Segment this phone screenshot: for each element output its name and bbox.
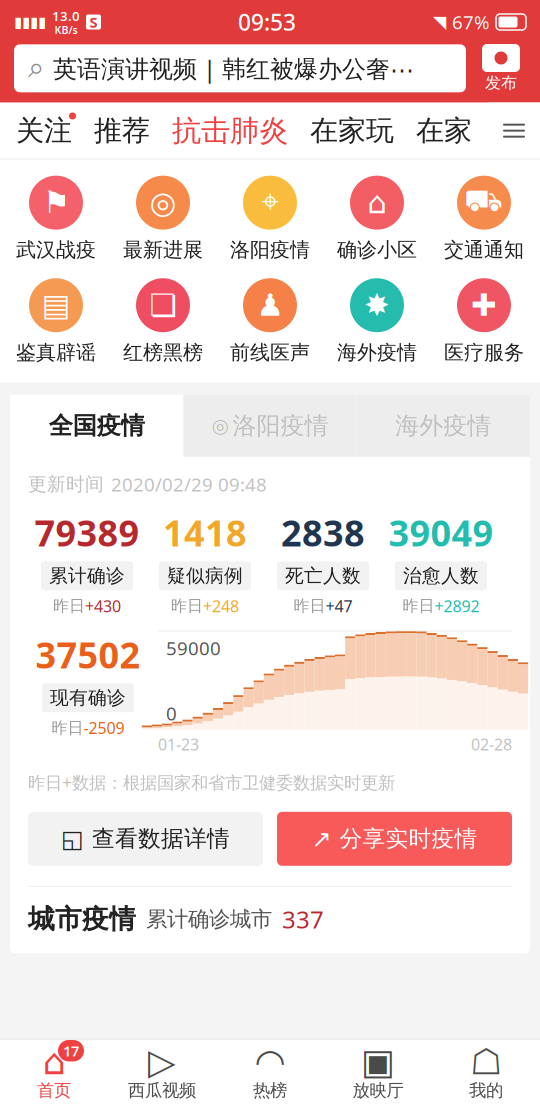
staticText: ↗ [311, 825, 331, 852]
button[interactable]: ⌖ [220, 176, 320, 262]
staticText: 疑似病例 [167, 564, 243, 587]
staticText: 337 [282, 903, 324, 935]
button[interactable]: ◠ [216, 1046, 324, 1101]
button[interactable]: 推荐 [94, 113, 150, 148]
button[interactable]: ⛟ [434, 176, 534, 262]
staticText: 昨日 [402, 596, 434, 616]
button[interactable]: 在家 [416, 113, 472, 148]
staticText: 首页 [37, 1080, 71, 1101]
button[interactable]: ↗ [277, 812, 512, 866]
staticText: 西瓜视频 [128, 1080, 196, 1101]
staticText: 洛阳疫情 [230, 238, 310, 262]
staticText: 79389 [34, 509, 139, 556]
staticText: ⚑ [42, 185, 69, 220]
staticText: ▷ [148, 1041, 176, 1082]
staticText: +47 [325, 595, 352, 616]
staticText: ◱ [61, 825, 84, 852]
button[interactable]: ✸ [327, 278, 427, 365]
staticText: 更新时间 [28, 473, 104, 496]
staticText: 现有确诊 [50, 686, 126, 709]
staticText: 59000 [166, 636, 221, 660]
staticText: ▮▮▮▮ [14, 14, 46, 30]
staticText: 查看数据详情 [92, 825, 230, 853]
button[interactable]: ♟ [220, 278, 320, 365]
staticText: 02-28 [471, 734, 512, 755]
button[interactable]: ⌕ [14, 44, 466, 92]
staticText: 昨日 [171, 596, 203, 616]
staticText: 死亡人数 [285, 564, 361, 587]
staticText: 我的 [469, 1080, 503, 1101]
staticText: ⛟ [464, 188, 503, 218]
staticText: 医疗服务 [444, 340, 524, 365]
button[interactable]: ⌂ [0, 1046, 108, 1101]
staticText: +248 [203, 595, 239, 616]
staticText: ♟ [256, 288, 283, 323]
staticText: 累计确诊城市 [146, 906, 272, 932]
staticText: 推荐 [94, 113, 150, 148]
staticText: 2838 [281, 509, 365, 556]
staticText: 分享实时疫情 [339, 825, 477, 853]
staticText: 交通通知 [444, 238, 524, 262]
button[interactable]: 抗击肺炎 [172, 113, 288, 149]
button[interactable]: ⌂ [327, 176, 427, 262]
staticText: +2892 [434, 595, 479, 616]
staticText: ◠ [254, 1041, 285, 1082]
staticText: ⌖ [261, 188, 278, 218]
staticText: ❏ [149, 288, 176, 323]
button[interactable]: 关注 [16, 113, 72, 148]
staticText: 治愈人数 [403, 564, 479, 587]
staticText: 1418 [163, 509, 247, 556]
staticText: ◎ [211, 414, 228, 437]
staticText: ⌕ [28, 54, 44, 83]
staticText: ◎ [149, 185, 176, 220]
staticText: 城市疫情 [28, 903, 136, 936]
staticText: +430 [85, 595, 121, 616]
staticText: 洛阳疫情 [232, 411, 328, 440]
button[interactable]: ◎ [113, 176, 213, 262]
staticText: 放映厅 [352, 1080, 403, 1101]
button[interactable]: 更多频道 [488, 103, 540, 159]
button[interactable]: ▤ [6, 278, 106, 365]
staticText: 昨日 [51, 718, 83, 738]
button[interactable]: 在家玩 [310, 113, 394, 148]
staticText: 在家 [416, 113, 472, 148]
button[interactable]: ☖ [432, 1046, 540, 1101]
button[interactable]: ❏ [113, 278, 213, 365]
button[interactable]: 海外疫情 [357, 395, 530, 457]
button[interactable]: ▣ [324, 1046, 432, 1101]
staticText: 累计确诊 [49, 564, 125, 587]
staticText: 67% [452, 10, 490, 34]
button[interactable]: ✚ [434, 278, 534, 365]
staticText: ▣ [361, 1041, 395, 1082]
staticText: -2509 [83, 717, 124, 738]
button[interactable]: ⚑ [6, 176, 106, 262]
staticText: 鉴真辟谣 [16, 340, 96, 365]
staticText: ⌂ [367, 185, 386, 220]
staticText: 海外疫情 [395, 411, 491, 440]
staticText: 2020/02/29 09:48 [111, 472, 267, 497]
staticText: 英语演讲视频 | 韩红被爆办公奢⋯ [53, 52, 414, 84]
staticText: ✚ [471, 288, 497, 323]
staticText: 抗击肺炎 [172, 113, 288, 149]
staticText: 09:53 [238, 7, 296, 37]
staticText: 39049 [388, 509, 493, 556]
staticText: 17 [63, 1041, 79, 1060]
staticText: 确诊小区 [337, 238, 417, 262]
button[interactable]: ▷ [108, 1046, 216, 1101]
staticText: 昨日 [53, 596, 85, 616]
staticText: ☖ [470, 1041, 502, 1082]
button[interactable]: ◱ [28, 812, 263, 866]
button[interactable]: ◎ [183, 395, 357, 457]
staticText: 昨日 [293, 596, 325, 616]
staticText: 热榜 [253, 1080, 287, 1101]
staticText: ◥ [433, 12, 446, 32]
staticText: 武汉战疫 [16, 238, 96, 262]
button[interactable]: 发布 [476, 44, 526, 93]
staticText: 最新进展 [123, 238, 203, 262]
staticText: 关注 [16, 113, 72, 148]
button[interactable]: 全国疫情 [10, 395, 183, 457]
staticText: ⌂ [42, 1041, 65, 1082]
staticText: 13.0 [52, 7, 80, 25]
staticText: S [89, 12, 97, 32]
staticText: ▤ [41, 288, 70, 323]
